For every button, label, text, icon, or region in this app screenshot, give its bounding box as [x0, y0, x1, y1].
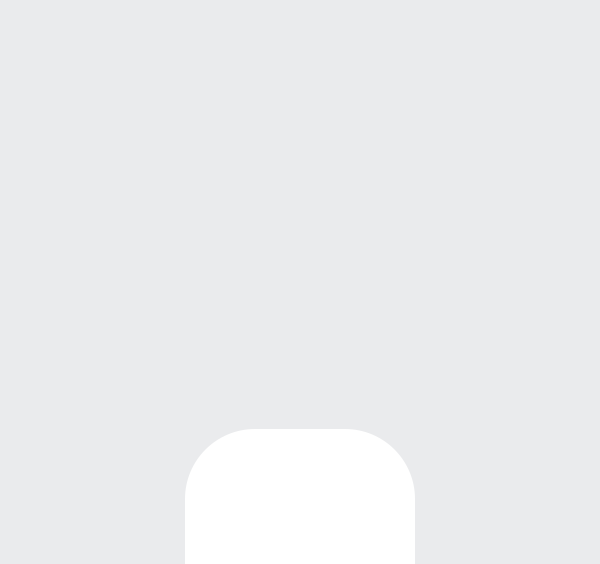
button[interactable]: Open [185, 429, 415, 564]
